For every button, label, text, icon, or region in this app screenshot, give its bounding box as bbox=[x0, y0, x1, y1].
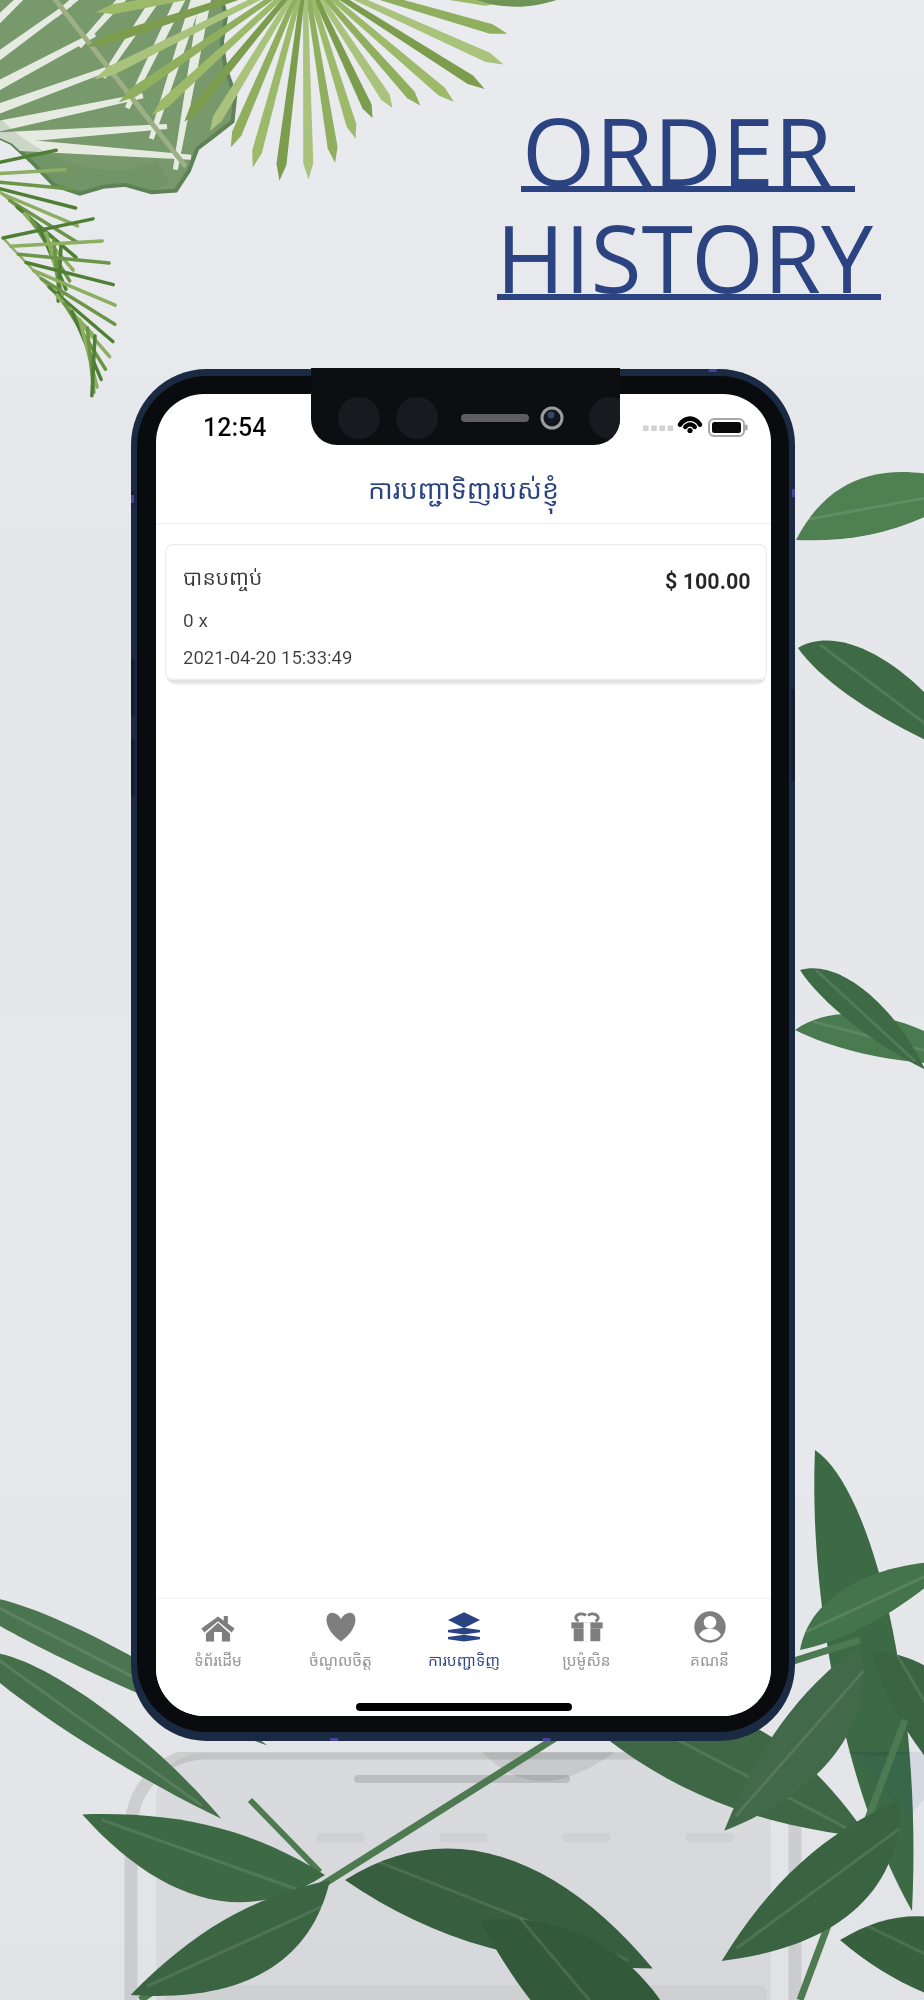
button[interactable]: បានបញ្ចប់ bbox=[165, 544, 767, 683]
staticText: ORDER bbox=[522, 86, 833, 214]
staticText: 12:54 bbox=[203, 413, 267, 442]
button[interactable]: Favorites bbox=[279, 1599, 402, 1716]
button[interactable]: Promotions bbox=[525, 1599, 648, 1716]
staticText: ការបញ្ជាទិញ bbox=[428, 1649, 500, 1670]
staticText: HISTORY bbox=[496, 194, 874, 321]
button[interactable]: Account bbox=[648, 1599, 771, 1716]
staticText: $ 100.00 bbox=[665, 569, 751, 594]
button[interactable]: Home bbox=[156, 1599, 279, 1716]
staticText: បានបញ្ចប់ bbox=[183, 563, 263, 592]
staticText: 0 x bbox=[183, 609, 208, 631]
staticText: គណនី bbox=[690, 1649, 729, 1670]
staticText: ទំព័រដើម bbox=[194, 1649, 242, 1670]
staticText: ចំណូលចិត្ត bbox=[309, 1649, 372, 1670]
staticText: ប្រម៉ូសិន bbox=[562, 1649, 611, 1670]
button[interactable]: Orders bbox=[402, 1599, 525, 1716]
staticText: ការបញ្ជាទិញរបស់ខ្ញុំ bbox=[368, 470, 559, 507]
staticText: 2021-04-20 15:33:49 bbox=[183, 647, 353, 669]
